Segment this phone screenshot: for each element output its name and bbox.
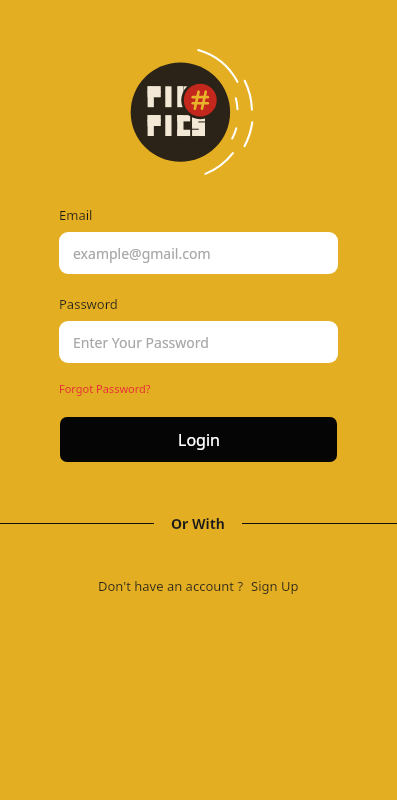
staticText: Sign Up <box>251 577 299 595</box>
staticText: Don't have an account ? <box>98 577 244 595</box>
staticText: example@gmail.com <box>73 244 211 263</box>
button[interactable]: Forgot Password? <box>59 381 151 396</box>
staticText: Or With <box>171 514 225 533</box>
button[interactable]: example@gmail.com <box>59 232 338 274</box>
button[interactable]: Login <box>60 417 337 462</box>
button[interactable]: Enter Your Password <box>59 321 338 363</box>
staticText: Password <box>59 295 118 313</box>
staticText: Enter Your Password <box>73 333 209 352</box>
staticText: Login <box>178 429 220 451</box>
staticText: Email <box>59 206 93 224</box>
button[interactable]: Sign Up <box>251 577 299 595</box>
staticText: Forgot Password? <box>59 381 151 396</box>
other: PIN PICS logo <box>131 62 283 180</box>
